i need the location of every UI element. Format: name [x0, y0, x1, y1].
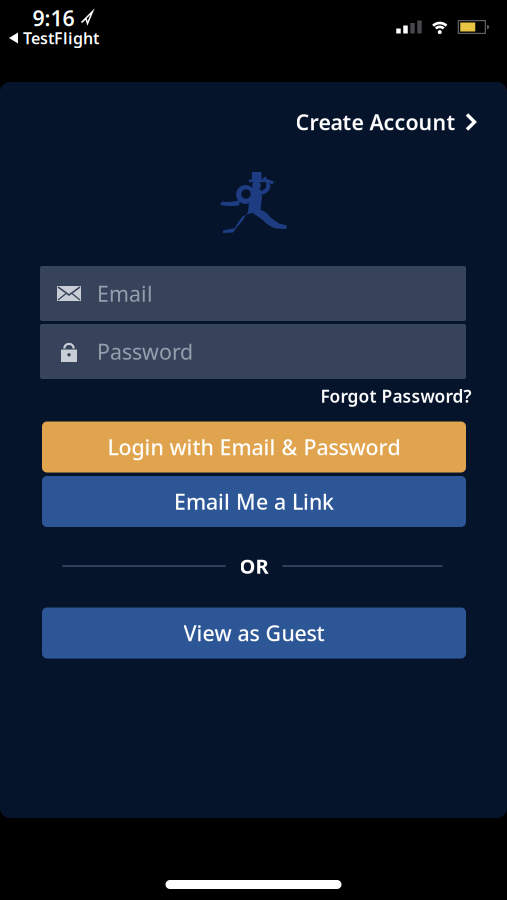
staticText: Email Me a Link [174, 487, 334, 516]
staticText: Password [97, 337, 193, 366]
button[interactable]: Forgot Password? [320, 384, 471, 407]
staticText: Login with Email & Password [107, 433, 400, 461]
button[interactable]: Email [40, 266, 466, 321]
staticText: View as Guest [183, 619, 324, 647]
staticText: OR [239, 553, 268, 579]
button[interactable]: Password [40, 324, 466, 379]
button[interactable]: Email Me a Link [42, 476, 466, 527]
staticText: 9:16 [32, 4, 74, 32]
button[interactable]: Back to TestFlight [9, 27, 99, 49]
staticText: Create Account [295, 108, 455, 136]
button[interactable]: Create Account [295, 108, 476, 136]
button[interactable]: Login with Email & Password [42, 421, 466, 472]
staticText: Email [97, 279, 153, 308]
button[interactable]: View as Guest [42, 607, 466, 658]
staticText: Forgot Password? [320, 384, 471, 407]
staticText: TestFlight [23, 27, 99, 49]
